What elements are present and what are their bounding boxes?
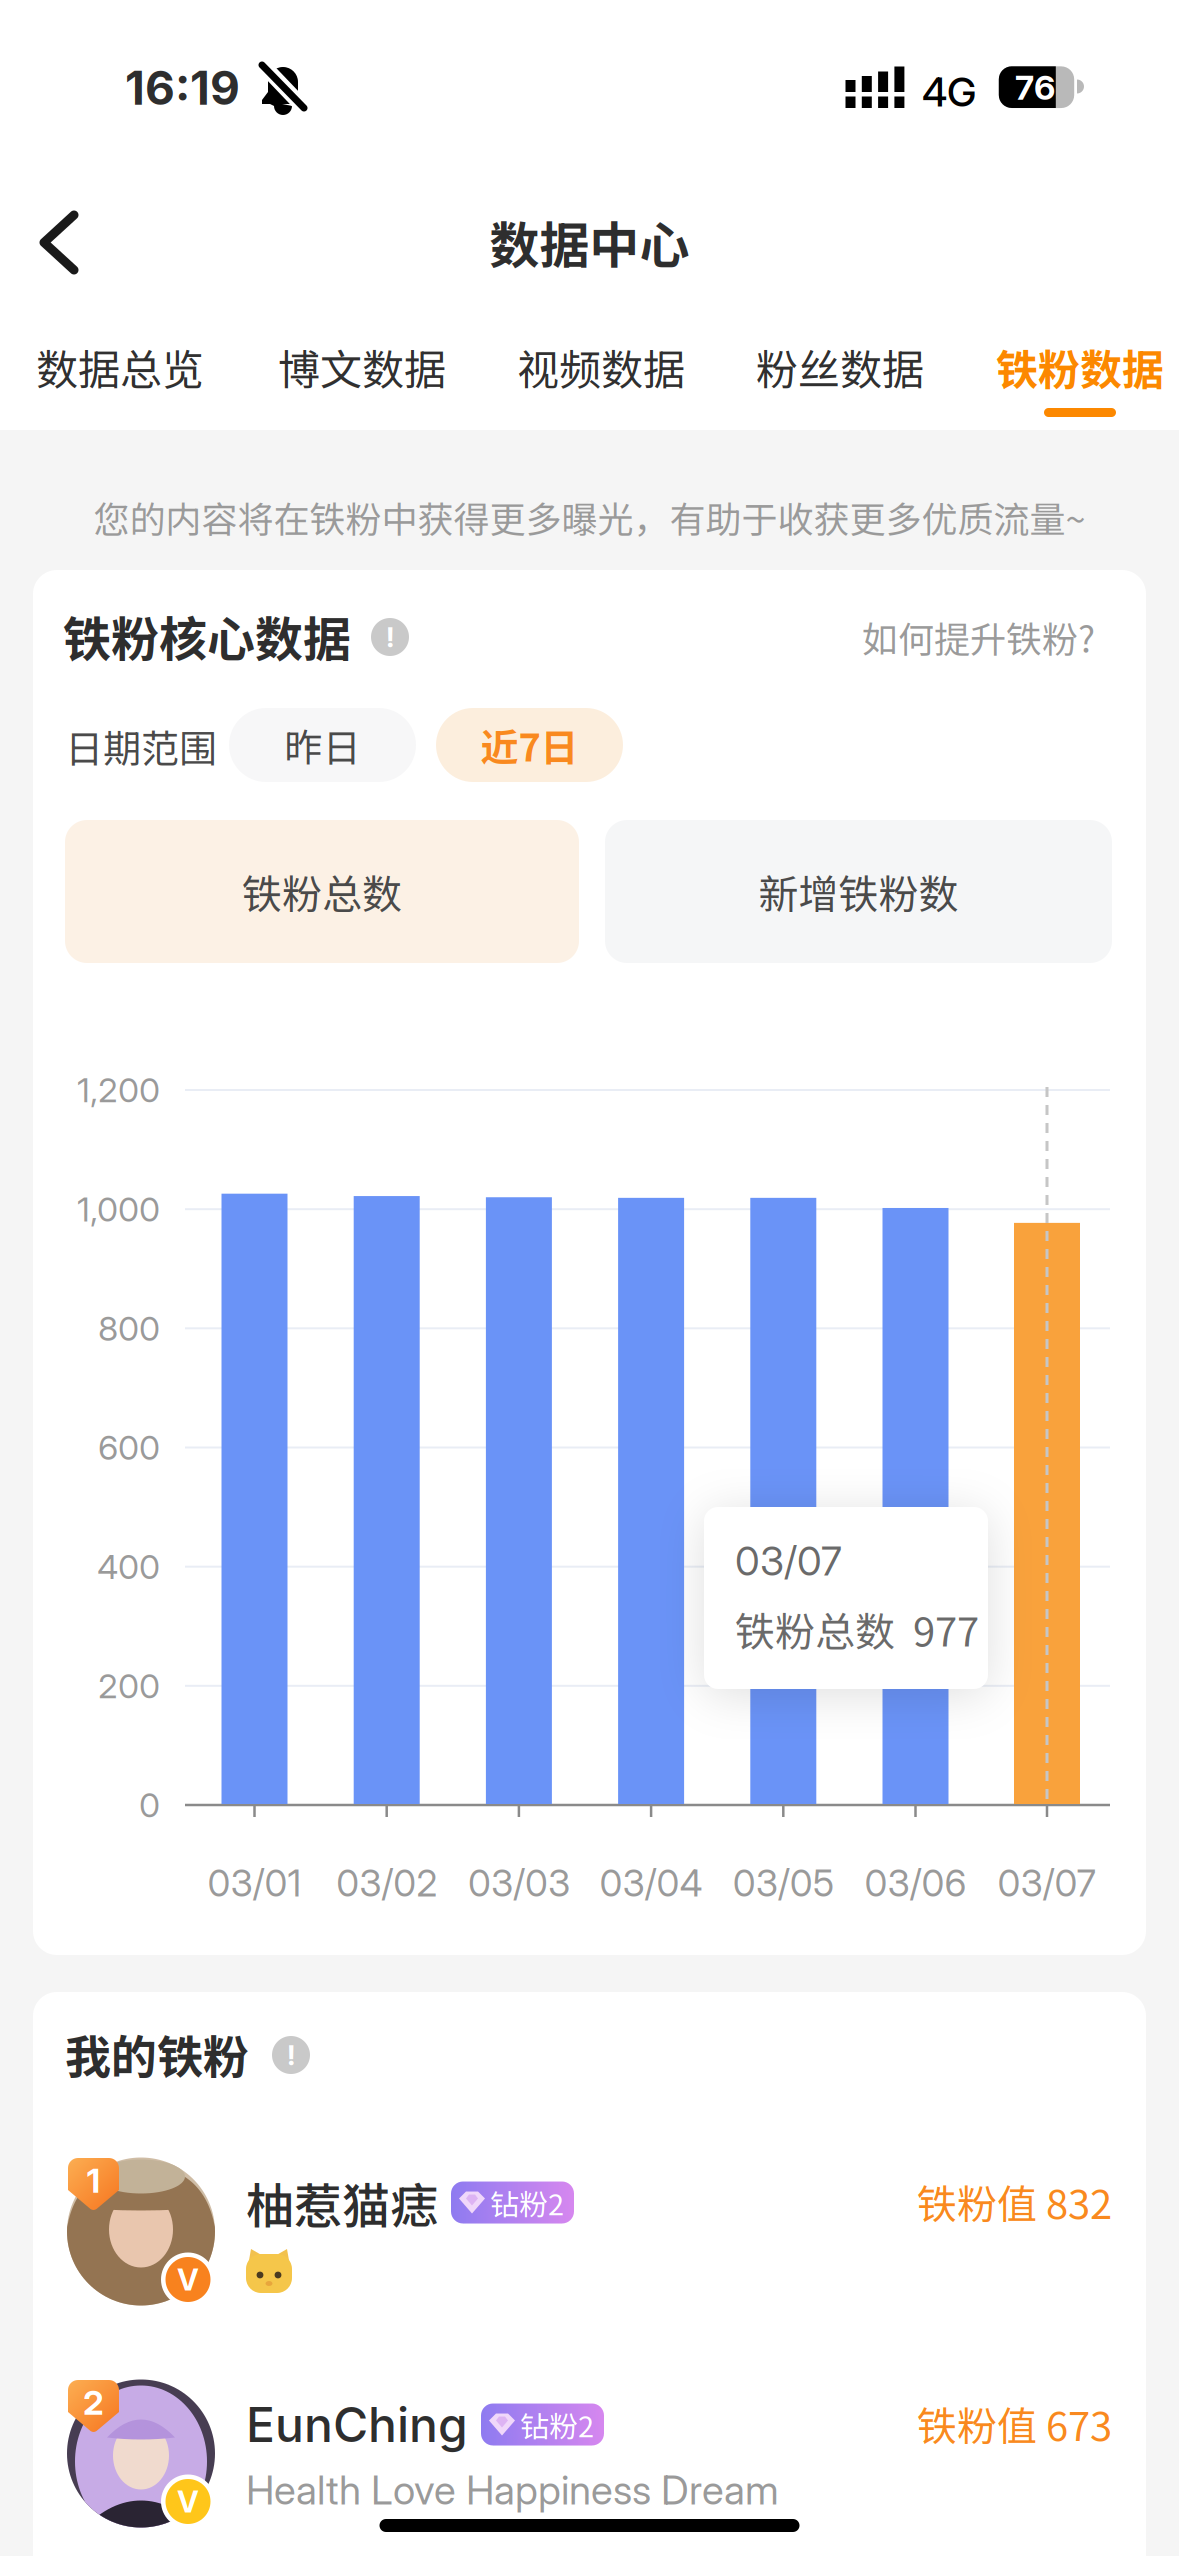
staticText: 1,000 [77,1189,160,1230]
staticText: 如何提升铁粉? [862,611,1095,663]
staticText: 03/06 [864,1861,966,1905]
staticText: EunChing [246,2395,468,2454]
staticText: 03/07 [997,1861,1096,1905]
staticText: 柚惹猫痣 [246,2168,438,2237]
staticText: 200 [98,1665,160,1706]
staticText: 03/05 [733,1861,834,1905]
staticText: 铁粉数据 [996,337,1164,397]
staticText: 800 [98,1308,160,1349]
staticText: ! [386,620,394,654]
staticText: 铁粉值 832 [917,2172,1112,2230]
staticText: 昨日 [284,717,360,772]
staticText: 03/04 [600,1861,703,1905]
staticText: 03/02 [336,1861,437,1905]
staticText: 76 [1015,67,1055,108]
staticText: 1 [86,2160,100,2201]
staticText: 数据总览 [36,337,204,397]
staticText: 新增铁粉数 [758,862,958,920]
staticText: 我的铁粉 [65,2021,249,2087]
staticText: 铁粉值 673 [917,2394,1112,2452]
staticText: 近7日 [480,717,578,772]
staticText: 钻粉2 [490,2181,564,2223]
staticText: 视频数据 [517,337,685,397]
staticText: 数据中心 [489,206,689,278]
staticText: 03/03 [468,1861,570,1905]
staticText: 您的内容将在铁粉中获得更多曝光，有助于收获更多优质流量~ [93,491,1085,543]
staticText: 4G [922,68,976,116]
staticText: 03/01 [207,1861,301,1905]
staticText: V [177,2483,199,2520]
staticText: 铁粉总数 977 [735,1600,979,1658]
staticText: 铁粉总数 [242,862,402,920]
staticText: Health Love Happiness Dream [246,2466,779,2514]
staticText: 16:19 [125,60,240,116]
staticText: 1,200 [77,1069,160,1110]
staticText: 03/07 [735,1537,842,1585]
staticText: 铁粉核心数据 [63,601,351,671]
staticText: 400 [97,1546,160,1587]
staticText: 2 [83,2382,104,2423]
staticText: 600 [98,1427,160,1468]
staticText: V [177,2261,199,2298]
staticText: 博文数据 [278,337,446,397]
staticText: 钻粉2 [520,2403,594,2445]
staticText: ! [287,2038,295,2072]
staticText: 粉丝数据 [756,337,924,397]
staticText: 日期范围 [65,718,217,773]
staticText: 0 [139,1784,160,1825]
